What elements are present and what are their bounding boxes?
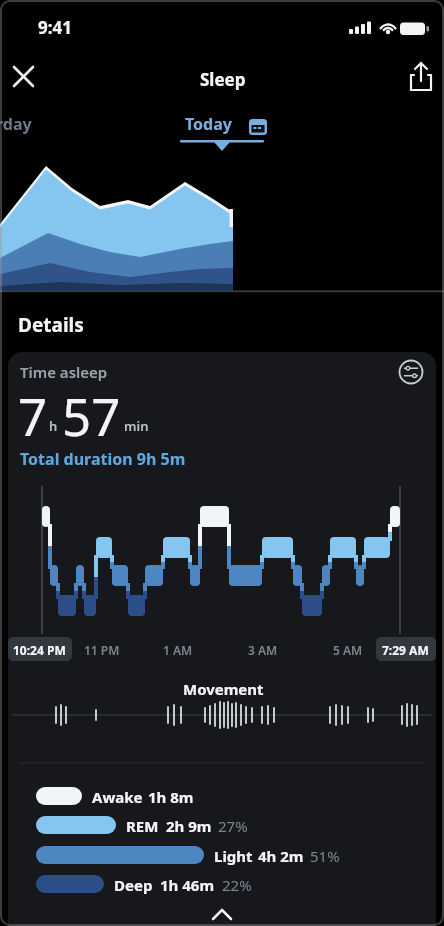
staticText: min (124, 417, 149, 435)
button[interactable] (28, 782, 308, 810)
button[interactable] (170, 104, 274, 152)
button[interactable] (392, 354, 432, 394)
button[interactable] (4, 56, 48, 96)
button[interactable] (8, 637, 72, 661)
staticText: REM (126, 816, 159, 836)
staticText: Today (185, 113, 232, 135)
staticText: 27% (218, 816, 248, 836)
staticText: 1 AM (163, 642, 193, 658)
staticText: rday (0, 113, 32, 135)
staticText: 2h 9m (166, 816, 212, 836)
button[interactable] (28, 812, 308, 840)
button[interactable] (28, 842, 308, 870)
staticText: 7:29 AM (382, 642, 429, 658)
staticText: Sleep (200, 68, 246, 91)
button[interactable] (398, 52, 442, 98)
staticText: Total duration 9h 5m (20, 448, 186, 470)
staticText: 22% (222, 875, 252, 895)
staticText: h (49, 417, 58, 435)
staticText: 5 AM (333, 642, 363, 658)
staticText: 3 AM (248, 642, 278, 658)
staticText: 10:24 PM (13, 642, 66, 658)
staticText: 1h 8m (148, 787, 194, 807)
staticText: Light (214, 846, 253, 866)
staticText: Details (18, 312, 84, 338)
staticText: Time asleep (20, 362, 108, 382)
button[interactable] (376, 637, 436, 661)
staticText: 1h 46m (160, 875, 215, 895)
staticText: 7 (18, 381, 48, 450)
staticText: 4h 2m (258, 846, 304, 866)
staticText: 11 PM (84, 642, 120, 658)
staticText: 57 (62, 381, 121, 450)
button[interactable] (198, 898, 246, 926)
staticText: Deep (114, 875, 153, 895)
staticText: 9:41 (38, 16, 72, 39)
staticText: Movement (183, 679, 264, 699)
staticText: 51% (310, 846, 340, 866)
staticText: Awake (92, 787, 143, 807)
button[interactable] (28, 872, 308, 900)
